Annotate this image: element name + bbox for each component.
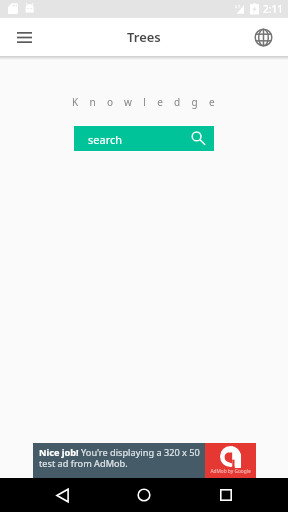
button[interactable]: Recent apps [206,478,246,512]
staticText: Trees [127,28,161,46]
button[interactable]: AdMob test advertisement banner [33,443,256,478]
button[interactable]: Back [42,478,82,512]
button[interactable]: search [74,126,214,151]
button[interactable]: Change language [248,22,278,52]
staticText: 2:11 [263,2,283,16]
button[interactable]: Open navigation drawer [9,22,39,52]
staticText: Knowledge [72,95,226,109]
staticText: search [88,132,123,147]
button[interactable]: Home [124,478,164,512]
staticText: Nice job! You're displaying a 320 x 50 t… [39,446,205,470]
staticText: AdMob by Google [210,468,251,475]
